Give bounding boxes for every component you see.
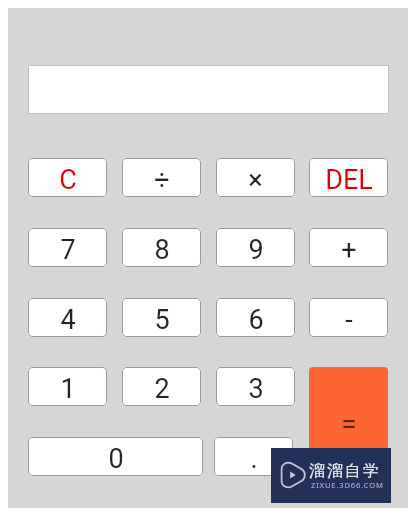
staticText: 7	[60, 234, 76, 266]
button[interactable]: 7	[28, 228, 107, 267]
button[interactable]: ÷	[122, 158, 201, 197]
button[interactable]: 8	[122, 228, 201, 267]
button[interactable]: .	[214, 437, 293, 476]
staticText: 溜溜自学	[309, 461, 381, 481]
button[interactable]: 5	[122, 298, 201, 337]
staticText: ×	[248, 164, 263, 196]
staticText: 8	[154, 234, 170, 266]
staticText: 5	[154, 304, 170, 336]
button[interactable]: C	[28, 158, 107, 197]
staticText: .	[250, 443, 258, 475]
button[interactable]: 0	[28, 437, 203, 476]
staticText: DEL	[325, 164, 373, 196]
staticText: 0	[108, 443, 124, 475]
button[interactable]: 9	[216, 228, 295, 267]
staticText: 1	[60, 373, 76, 405]
staticText: 2	[154, 373, 170, 405]
staticText: +	[341, 234, 357, 266]
button[interactable]: +	[309, 228, 388, 267]
button[interactable]: =	[309, 367, 388, 476]
staticText: 9	[248, 234, 264, 266]
button[interactable]: 3	[216, 367, 295, 406]
staticText: =	[341, 407, 357, 440]
staticText: 4	[60, 304, 76, 336]
staticText: -	[345, 304, 353, 336]
button[interactable]: 6	[216, 298, 295, 337]
button[interactable]: 4	[28, 298, 107, 337]
staticText: C	[59, 164, 77, 196]
button[interactable]: 2	[122, 367, 201, 406]
button[interactable]: ×	[216, 158, 295, 197]
button[interactable]: -	[309, 298, 388, 337]
button[interactable]: DEL	[309, 158, 388, 197]
button[interactable]: 1	[28, 367, 107, 406]
staticText: ÷	[154, 164, 170, 196]
staticText: 6	[248, 304, 264, 336]
staticText: ZIXUE.3D66.COM	[311, 480, 384, 490]
staticText: 3	[248, 373, 264, 405]
